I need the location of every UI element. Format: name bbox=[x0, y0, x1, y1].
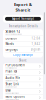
button[interactable]: Share Link bbox=[3, 82, 43, 88]
staticText: Export Transcript bbox=[12, 17, 34, 20]
staticText: Send as attachment bbox=[5, 92, 18, 94]
staticText: Export & bbox=[14, 2, 32, 7]
button[interactable]: Plain Text bbox=[3, 69, 43, 75]
staticText: Email bbox=[5, 89, 11, 92]
staticText: Share it bbox=[15, 7, 30, 12]
staticText: Audio File bbox=[5, 76, 20, 80]
button[interactable]: Email bbox=[3, 88, 43, 94]
staticText: Expires in 7 days bbox=[5, 86, 17, 88]
staticText: 12:04 bbox=[32, 37, 41, 40]
staticText: Recorded today at 09:41 bbox=[5, 33, 22, 35]
staticText: Raw transcript bbox=[5, 73, 15, 75]
staticText: More Options bbox=[5, 95, 24, 98]
staticText: PDF Document bbox=[5, 63, 25, 67]
staticText: Original recording bbox=[5, 80, 18, 81]
button[interactable]: Copy Transcript bbox=[3, 52, 43, 57]
staticText: 1,842 bbox=[32, 42, 41, 46]
staticText: English bbox=[31, 48, 41, 51]
staticText: Session 12 bbox=[5, 30, 20, 33]
button[interactable]: More Options bbox=[3, 95, 43, 100]
staticText: Share bbox=[19, 59, 27, 62]
button[interactable]: Audio File bbox=[3, 76, 43, 82]
button[interactable]: Export Transcript bbox=[3, 15, 43, 23]
staticText: Share Link bbox=[5, 82, 18, 86]
button[interactable]: PDF Document bbox=[3, 63, 43, 69]
staticText: Language bbox=[5, 48, 18, 51]
staticText: Apps and services bbox=[5, 99, 19, 100]
staticText: Plain Text bbox=[5, 70, 17, 73]
staticText: Transcription Details bbox=[8, 24, 37, 28]
staticText: Formatted layout bbox=[5, 67, 16, 69]
staticText: Duration bbox=[5, 37, 17, 40]
staticText: Copy Transcript bbox=[13, 53, 33, 57]
staticText: Words bbox=[5, 42, 13, 46]
